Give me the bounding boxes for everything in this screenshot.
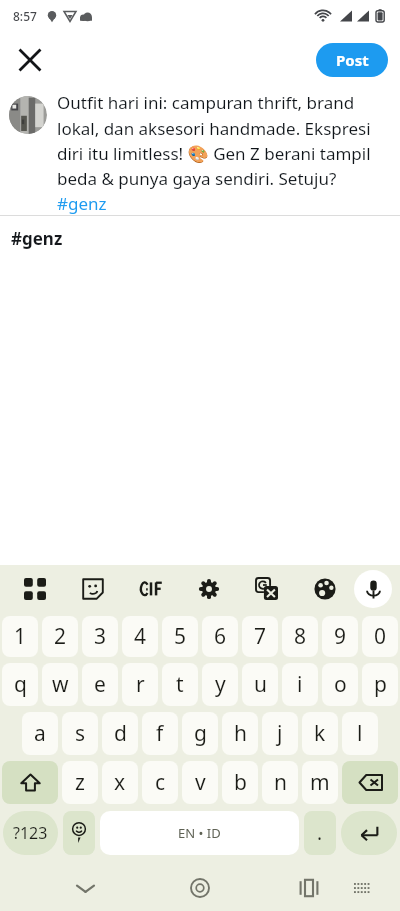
button[interactable]: e xyxy=(82,663,118,706)
button[interactable]: Voice input xyxy=(354,570,392,608)
staticText: s xyxy=(75,719,86,748)
button[interactable]: r xyxy=(122,663,158,706)
button[interactable]: Stickers xyxy=(64,565,122,613)
staticText: 2 xyxy=(54,622,67,651)
button[interactable]: EN • ID xyxy=(100,811,299,855)
staticText: i xyxy=(297,670,303,699)
staticText: b xyxy=(234,768,247,797)
button[interactable]: s xyxy=(62,712,98,755)
staticText: r xyxy=(136,670,145,699)
button[interactable]: h xyxy=(222,712,258,755)
button[interactable]: Recent apps xyxy=(288,867,330,909)
button[interactable]: g xyxy=(182,712,218,755)
staticText: p xyxy=(374,670,387,699)
button[interactable]: d xyxy=(102,712,138,755)
button[interactable]: 9 xyxy=(322,616,358,657)
staticText: c xyxy=(155,768,166,797)
button[interactable]: 7 xyxy=(242,616,278,657)
button[interactable]: Shift xyxy=(2,761,58,804)
button[interactable]: Outfit hari ini: campuran thrift, brand … xyxy=(57,91,390,215)
staticText: 3 xyxy=(94,622,107,651)
staticText: 4 xyxy=(134,622,147,651)
button[interactable]: 0 xyxy=(362,616,398,657)
button[interactable]: Themes xyxy=(296,565,354,613)
button[interactable]: b xyxy=(222,761,258,804)
staticText: k xyxy=(314,719,326,748)
button[interactable]: j xyxy=(262,712,298,755)
button[interactable]: l xyxy=(342,712,378,755)
button[interactable]: . xyxy=(304,811,336,855)
button[interactable]: x xyxy=(102,761,138,804)
button[interactable]: Home xyxy=(179,867,221,909)
staticText: u xyxy=(254,670,267,699)
button[interactable]: u xyxy=(242,663,278,706)
button[interactable]: c xyxy=(142,761,178,804)
staticText: e xyxy=(94,670,106,699)
staticText: Post xyxy=(336,50,369,70)
button[interactable]: 1 xyxy=(2,616,38,657)
staticText: 8 xyxy=(294,622,307,651)
button[interactable]: Emoji xyxy=(63,811,95,855)
button[interactable]: Clipboard xyxy=(6,565,64,613)
button[interactable]: Hide keyboard xyxy=(64,867,106,909)
button[interactable]: v xyxy=(182,761,218,804)
button[interactable]: Profile photo xyxy=(9,96,47,134)
button[interactable]: 5 xyxy=(162,616,198,657)
staticText: q xyxy=(14,670,27,699)
staticText: 9 xyxy=(334,622,347,651)
button[interactable]: 3 xyxy=(82,616,118,657)
button[interactable]: Switch keyboard xyxy=(342,869,380,907)
button[interactable]: Post xyxy=(316,43,388,77)
staticText: x xyxy=(114,768,126,797)
staticText: 8:57 xyxy=(13,8,37,24)
button[interactable]: i xyxy=(282,663,318,706)
staticText: ?123 xyxy=(13,822,48,844)
staticText: w xyxy=(52,670,69,699)
staticText: h xyxy=(234,719,247,748)
button[interactable]: Close xyxy=(7,37,53,83)
staticText: l xyxy=(357,719,363,748)
staticText: 1 xyxy=(14,622,27,651)
button[interactable]: GIF xyxy=(122,565,180,613)
button[interactable]: q xyxy=(2,663,38,706)
staticText: 0 xyxy=(374,622,387,651)
button[interactable]: Enter xyxy=(341,811,397,855)
staticText: 6 xyxy=(214,622,227,651)
staticText: n xyxy=(274,768,287,797)
button[interactable]: o xyxy=(322,663,358,706)
button[interactable]: a xyxy=(22,712,58,755)
button[interactable]: Settings xyxy=(180,565,238,613)
staticText: y xyxy=(215,670,226,699)
staticText: EN • ID xyxy=(178,824,221,842)
button[interactable]: y xyxy=(202,663,238,706)
button[interactable]: w xyxy=(42,663,78,706)
button[interactable]: z xyxy=(62,761,98,804)
staticText: 5 xyxy=(174,622,187,651)
staticText: . xyxy=(317,820,323,846)
staticText: #genz xyxy=(11,227,63,250)
staticText: v xyxy=(195,768,206,797)
staticText: t xyxy=(176,670,184,699)
button[interactable]: Translate xyxy=(238,565,296,613)
button[interactable]: t xyxy=(162,663,198,706)
button[interactable]: n xyxy=(262,761,298,804)
button[interactable]: 6 xyxy=(202,616,238,657)
button[interactable]: m xyxy=(302,761,338,804)
staticText: j xyxy=(277,719,283,748)
button[interactable]: Backspace xyxy=(342,761,398,804)
button[interactable]: ?123 xyxy=(3,811,58,855)
staticText: f xyxy=(156,719,164,748)
staticText: 7 xyxy=(254,622,267,651)
staticText: o xyxy=(334,670,347,699)
button[interactable]: k xyxy=(302,712,338,755)
staticText: g xyxy=(194,719,207,748)
staticText: Outfit hari ini: campuran thrift, brand … xyxy=(57,91,390,215)
staticText: d xyxy=(114,719,127,748)
button[interactable]: 2 xyxy=(42,616,78,657)
button[interactable]: f xyxy=(142,712,178,755)
button[interactable]: 8 xyxy=(282,616,318,657)
button[interactable]: p xyxy=(362,663,398,706)
button[interactable]: 4 xyxy=(122,616,158,657)
button[interactable]: #genz xyxy=(0,216,400,259)
staticText: z xyxy=(75,768,85,797)
